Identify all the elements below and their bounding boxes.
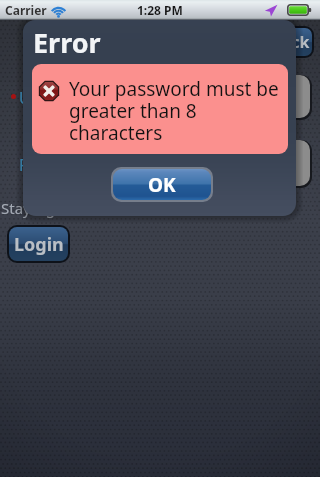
staticText: Password [19, 154, 92, 176]
staticText: 1:28 PM [137, 2, 183, 18]
staticText: OK [148, 172, 176, 198]
button[interactable]: Login [9, 227, 68, 261]
button[interactable]: OK [113, 169, 211, 200]
other: Error [38, 80, 60, 102]
staticText: Your password must be greater than 8 cha… [69, 76, 285, 146]
staticText: Back [271, 31, 310, 53]
staticText: Username [19, 87, 97, 109]
staticText: Error [33, 24, 101, 61]
button[interactable] [110, 140, 310, 186]
button[interactable]: Back [268, 28, 312, 56]
staticText: Login [14, 232, 64, 257]
staticText: Carrier [5, 2, 47, 18]
staticText: Stay signed in [1, 198, 99, 218]
button[interactable] [110, 75, 310, 118]
